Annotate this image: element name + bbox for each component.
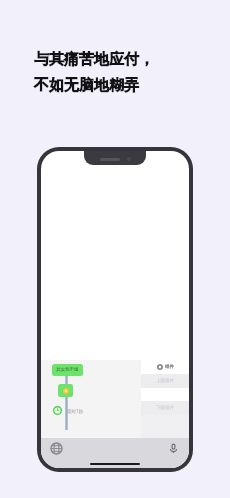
button[interactable]: 组件: [141, 360, 189, 374]
staticText: 组件: [165, 364, 174, 370]
button[interactable]: Voice input: [167, 442, 180, 455]
button[interactable]: 下级组件: [141, 401, 189, 415]
staticText: 与其痛苦地应付，: [34, 50, 154, 69]
button[interactable]: 上级组件: [141, 374, 189, 388]
button[interactable]: Node: [58, 384, 73, 397]
staticText: 延时1秒: [67, 408, 84, 414]
staticText: 下级组件: [156, 405, 174, 411]
button[interactable]: 延时1秒: [52, 405, 84, 416]
button[interactable]: Switch keyboard: [50, 442, 63, 455]
staticText: 不如无脑地糊弄: [34, 76, 139, 95]
staticText: 其实我不懂: [56, 367, 79, 373]
staticText: 上级组件: [156, 378, 174, 384]
button[interactable]: 其实我不懂: [52, 364, 83, 376]
